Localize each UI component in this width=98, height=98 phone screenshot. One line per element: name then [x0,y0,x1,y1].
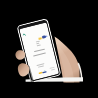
button[interactable]: Back [22,33,26,36]
button[interactable]: Featured card [38,34,48,41]
button[interactable]: Promotion [38,70,48,75]
